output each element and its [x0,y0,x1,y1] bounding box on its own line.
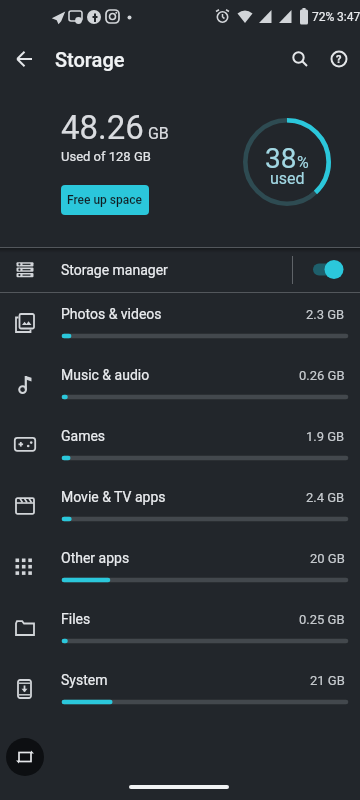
button[interactable] [0,598,360,659]
button[interactable]: Free up space [61,185,149,215]
staticText: Music & audio [61,367,150,383]
button[interactable] [6,738,44,776]
staticText: Files [61,611,91,627]
button[interactable] [0,415,360,476]
staticText: 2.3 GB [306,307,345,322]
staticText: 2.4 GB [306,490,345,505]
button[interactable] [0,537,360,598]
staticText: Other apps [61,550,130,566]
staticText: 1.9 GB [306,429,345,444]
button[interactable] [283,42,317,76]
button[interactable] [8,42,42,76]
button[interactable] [306,258,350,282]
button[interactable] [0,476,360,537]
button[interactable] [0,293,360,354]
staticText: % [297,153,309,172]
staticText: 38 [265,142,297,170]
button[interactable] [0,248,360,292]
staticText: Used of 128 GB [61,149,151,164]
staticText: Free up space [67,193,143,207]
staticText: System [61,672,108,688]
staticText: ? [336,53,342,66]
staticText: 21 GB [310,673,345,688]
button[interactable]: ? [322,42,356,76]
staticText: 48.26 [61,108,144,147]
staticText: 0.26 GB [299,368,345,383]
staticText: 3:47 [337,10,360,24]
staticText: GB [144,124,169,143]
staticText: Storage [55,48,125,71]
button[interactable] [0,354,360,415]
staticText: Storage manager [61,262,168,278]
staticText: used [270,169,305,188]
staticText: 72% [312,10,335,24]
staticText: Movie & TV apps [61,489,166,505]
staticText: 0.25 GB [299,612,345,627]
staticText: 20 GB [310,551,345,566]
staticText: Photos & videos [61,306,162,322]
staticText: Games [61,428,106,444]
button[interactable] [0,659,360,720]
